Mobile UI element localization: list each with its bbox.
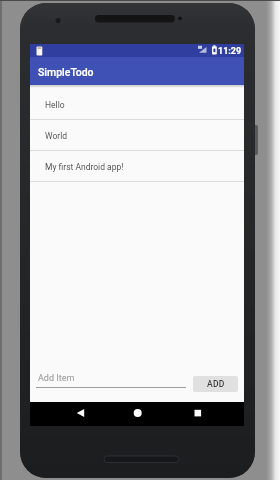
button[interactable]: World bbox=[30, 120, 244, 151]
staticText: SimpleTodo bbox=[38, 66, 94, 78]
button[interactable] bbox=[173, 402, 244, 426]
button[interactable]: ADD bbox=[193, 376, 238, 392]
staticText: ADD bbox=[207, 379, 225, 389]
staticText: My first Android app! bbox=[45, 162, 124, 172]
staticText: World bbox=[45, 131, 68, 141]
staticText: Hello bbox=[45, 100, 65, 110]
button[interactable] bbox=[30, 402, 102, 426]
button[interactable] bbox=[102, 402, 173, 426]
staticText: Add Item bbox=[38, 373, 75, 384]
button[interactable] bbox=[34, 370, 188, 394]
button[interactable]: My first Android app! bbox=[30, 151, 244, 182]
button[interactable]: Hello bbox=[30, 89, 244, 120]
staticText: 11:29 bbox=[218, 46, 242, 57]
